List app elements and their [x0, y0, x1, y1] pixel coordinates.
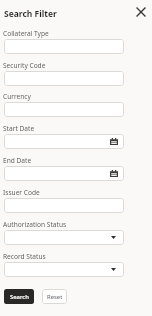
staticText: Search Filter	[4, 8, 57, 20]
button[interactable]: Authorization Status	[4, 230, 124, 245]
staticText: End Date	[3, 156, 32, 165]
staticText: Collateral Type	[3, 29, 49, 38]
button[interactable]: Security Code	[4, 71, 124, 86]
staticText: Record Status	[3, 252, 46, 261]
button[interactable]: Record Status	[4, 262, 124, 277]
staticText: Authorization Status	[3, 220, 67, 229]
staticText: Issuer Code	[3, 188, 40, 197]
button[interactable]: Start Date	[4, 134, 124, 149]
staticText: Security Code	[3, 61, 46, 70]
button[interactable]: Close	[133, 4, 149, 20]
button[interactable]: Collateral Type	[4, 39, 124, 54]
button[interactable]: Open dropdown	[109, 265, 118, 274]
button[interactable]: Open dropdown	[109, 233, 118, 242]
staticText: Start Date	[3, 124, 35, 133]
button[interactable]: Pick date	[108, 168, 120, 180]
button[interactable]: Search	[4, 289, 34, 304]
button[interactable]: End Date	[4, 166, 124, 181]
button[interactable]: Reset	[42, 289, 67, 304]
button[interactable]: Issuer Code	[4, 198, 124, 213]
staticText: Currency	[3, 92, 31, 101]
staticText: Reset	[47, 293, 63, 301]
button[interactable]: Pick date	[108, 136, 120, 148]
staticText: Search	[10, 293, 29, 301]
button[interactable]: Currency	[4, 102, 124, 117]
